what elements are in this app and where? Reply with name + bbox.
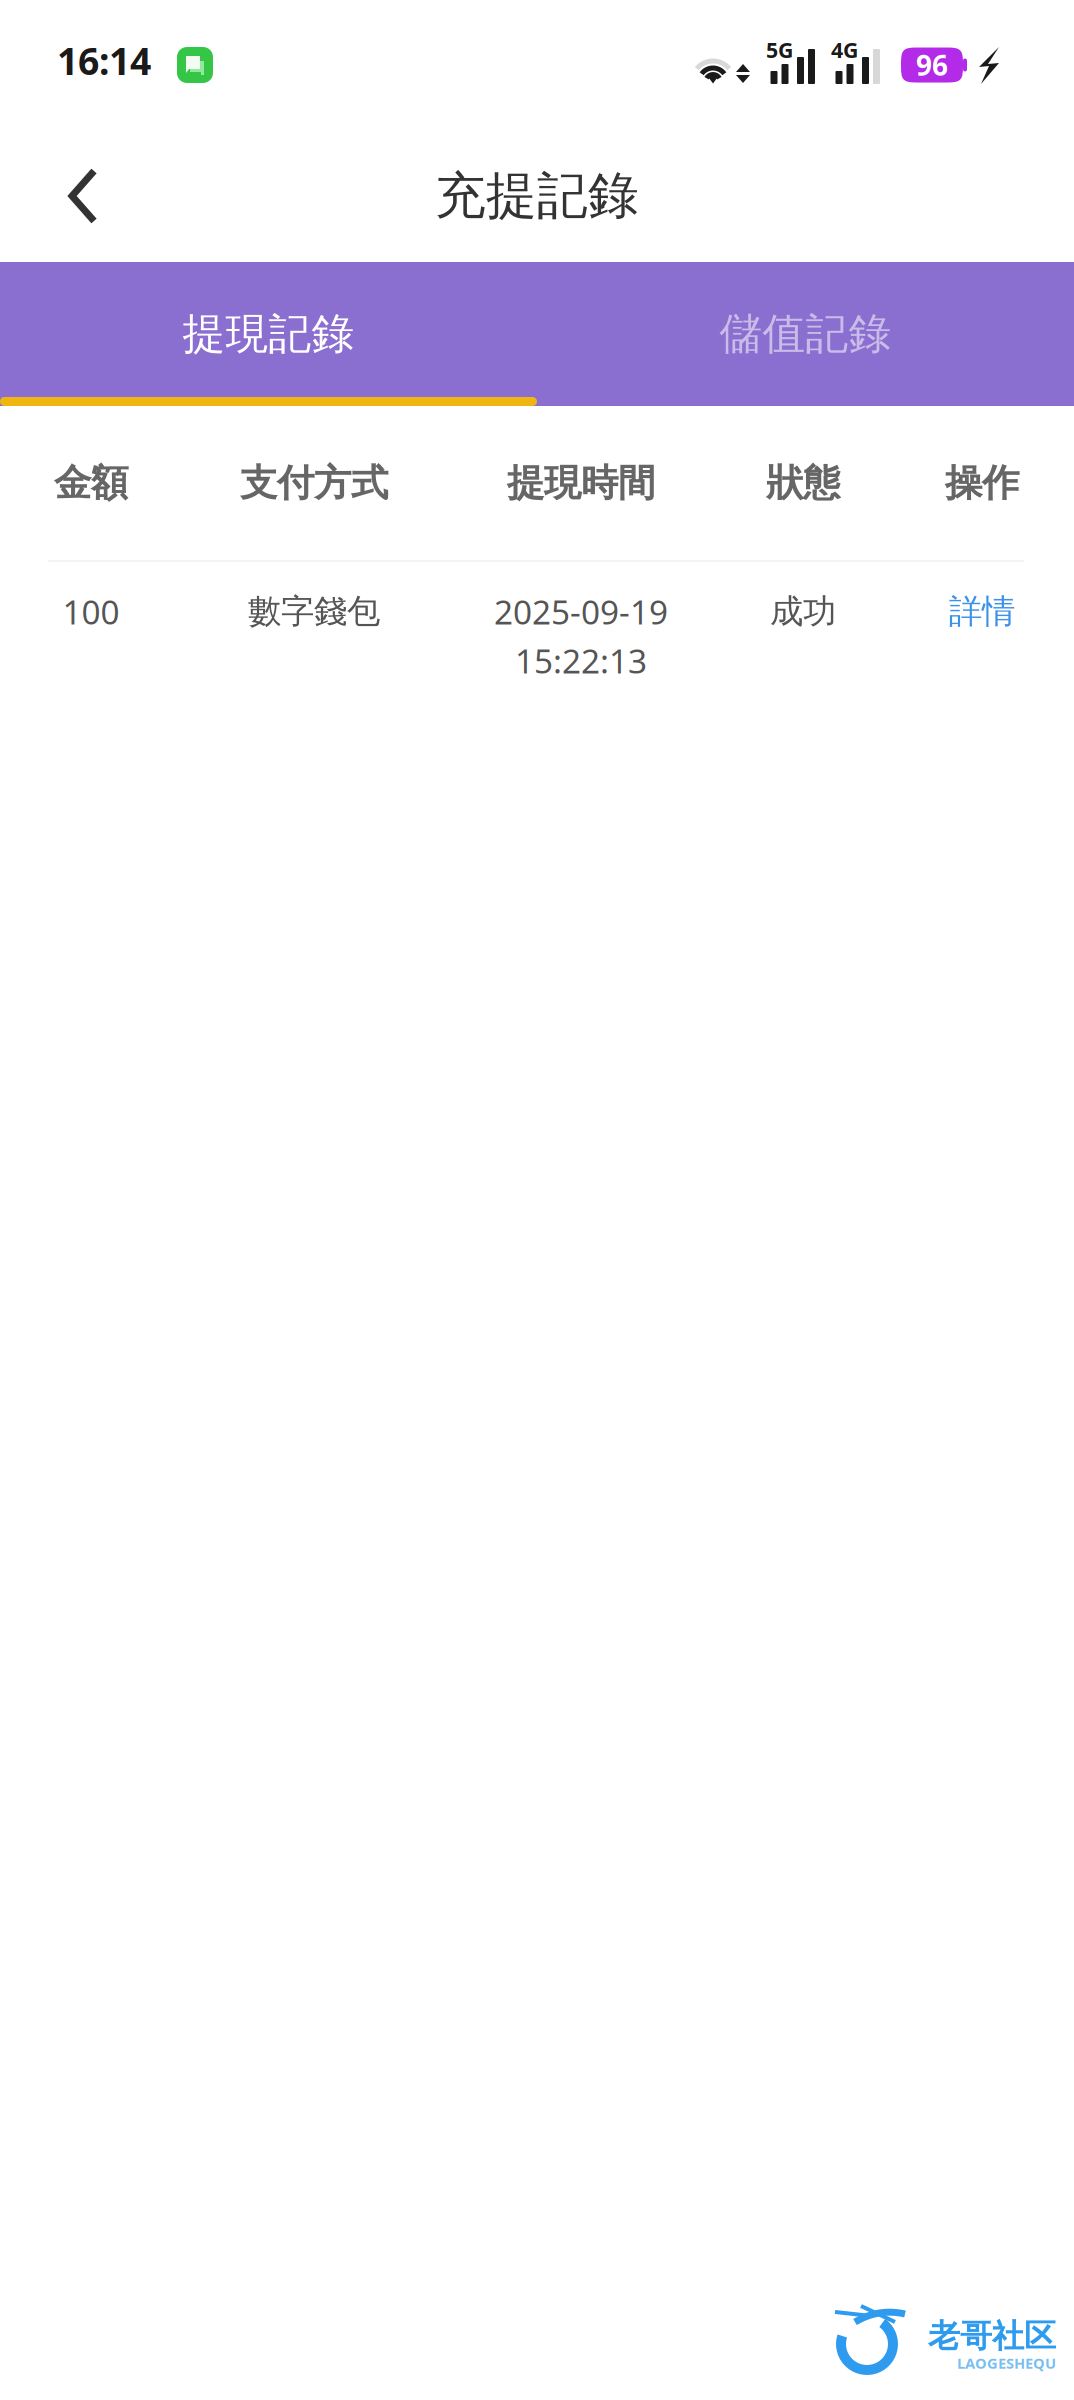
button[interactable]: Back (0, 141, 123, 251)
staticText: 支付方式 (240, 460, 388, 506)
staticText: 詳情 (949, 591, 1015, 632)
staticText: 儲值記錄 (719, 308, 891, 360)
staticText: 數字錢包 (248, 591, 380, 632)
staticText: 100 (62, 589, 119, 634)
staticText: 2025-09-19 (494, 589, 668, 634)
staticText: 5G (766, 36, 793, 64)
button[interactable]: 詳情 (890, 587, 1074, 636)
staticText: 提現時間 (507, 460, 655, 506)
staticText: 成功 (770, 591, 836, 632)
button[interactable]: 儲值記錄 (537, 262, 1074, 406)
staticText: 16:14 (57, 36, 151, 85)
staticText: LAOGESHEQU (957, 2353, 1056, 2373)
staticText: 96 (916, 46, 948, 84)
staticText: 4G (831, 36, 858, 64)
staticText: 15:22:13 (515, 638, 647, 683)
staticText: 提現記錄 (182, 308, 354, 360)
staticText: 老哥社区 (928, 2316, 1056, 2356)
staticText: 充提記錄 (435, 165, 639, 227)
staticText: 操作 (945, 460, 1019, 506)
staticText: 金額 (54, 460, 128, 506)
staticText: 狀態 (766, 460, 840, 506)
button[interactable]: 提現記錄 (0, 262, 537, 406)
